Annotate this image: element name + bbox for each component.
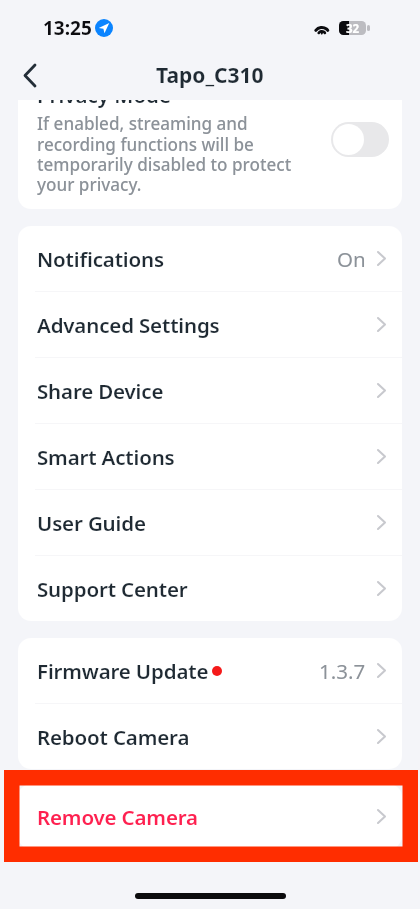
button[interactable]: Remove Camera — [18, 784, 402, 849]
staticText: Notifications — [37, 245, 164, 273]
button[interactable]: Privacy Mode toggle — [331, 122, 389, 157]
staticText: 32 — [346, 21, 360, 35]
staticText: If enabled, streaming and recording func… — [37, 112, 292, 196]
staticText: Firmware Update — [37, 657, 209, 685]
staticText: Remove Camera — [37, 803, 198, 831]
staticText: Reboot Camera — [37, 723, 190, 751]
staticText: Tapo_C310 — [156, 61, 264, 90]
button[interactable]: User Guide — [18, 490, 402, 555]
button[interactable]: Reboot Camera — [18, 704, 402, 769]
button[interactable]: Smart Actions — [18, 424, 402, 489]
staticText: On — [337, 245, 366, 273]
staticText: 1.3.7 — [319, 657, 366, 685]
button[interactable]: Privacy Mode — [18, 100, 402, 209]
button[interactable]: Notifications — [18, 226, 402, 291]
staticText: Privacy Mode — [37, 100, 171, 109]
button[interactable]: Share Device — [18, 358, 402, 423]
staticText: 13:25 — [43, 15, 92, 41]
button[interactable]: Back — [12, 57, 48, 93]
button[interactable]: Firmware Update — [18, 638, 402, 703]
button[interactable]: Support Center — [18, 556, 402, 621]
button[interactable]: Advanced Settings — [18, 292, 402, 357]
staticText: Advanced Settings — [37, 311, 220, 339]
staticText: Share Device — [37, 377, 164, 405]
staticText: Smart Actions — [37, 443, 175, 471]
staticText: User Guide — [37, 509, 146, 537]
staticText: Support Center — [37, 575, 188, 603]
